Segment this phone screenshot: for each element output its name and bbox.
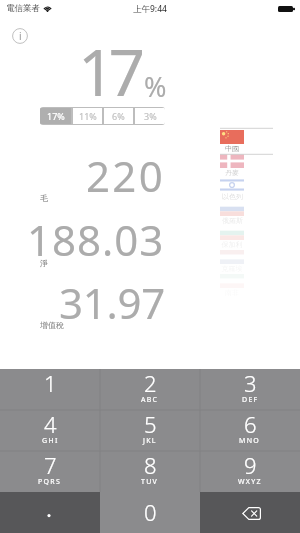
staticText: DEF	[242, 395, 259, 405]
staticText: 2	[144, 368, 157, 398]
staticText: 保加利亞	[220, 240, 244, 249]
staticText: 188.03	[27, 211, 165, 268]
button[interactable]: 4	[0, 410, 100, 451]
staticText: JKL	[143, 436, 157, 446]
staticText: 上午9:44	[133, 3, 167, 15]
staticText: 3	[244, 368, 257, 398]
staticText: 3%	[144, 110, 157, 122]
button[interactable]: 6	[200, 410, 300, 451]
button[interactable]: 0	[100, 492, 200, 533]
button[interactable]: 9	[200, 451, 300, 492]
staticText: 17	[78, 28, 140, 115]
button[interactable]: Delete	[200, 492, 300, 533]
staticText: %	[144, 68, 167, 105]
staticText: 以色列	[222, 192, 243, 201]
staticText: 1	[44, 368, 57, 398]
staticText: 17%	[47, 110, 65, 122]
staticText: 6	[244, 409, 257, 439]
staticText: PQRS	[38, 477, 62, 487]
staticText: GHI	[42, 436, 59, 446]
button[interactable]: Info	[12, 28, 28, 44]
staticText: 中國	[225, 144, 239, 153]
button[interactable]: 17%	[40, 108, 71, 124]
staticText: 7	[44, 450, 57, 480]
staticText: i	[19, 29, 22, 43]
staticText: ABC	[141, 395, 159, 405]
staticText: 11%	[79, 110, 97, 122]
staticText: MNO	[239, 436, 261, 446]
staticText: 31.97	[59, 274, 165, 331]
staticText: 4	[44, 409, 57, 439]
staticText: 220	[86, 147, 165, 204]
staticText: 5	[144, 409, 157, 439]
button[interactable]: 11%	[73, 108, 102, 124]
staticText: 電信業者	[6, 3, 40, 14]
button[interactable]: 5	[100, 410, 200, 451]
button[interactable]: 8	[100, 451, 200, 492]
button[interactable]: 3%	[135, 108, 165, 124]
staticText: 增值稅	[40, 320, 64, 330]
staticText: 8	[144, 450, 157, 480]
staticText: WXYZ	[238, 477, 262, 487]
button[interactable]: Country picker	[220, 124, 276, 324]
staticText: 淨	[40, 258, 48, 268]
staticText: 0	[144, 497, 157, 527]
button[interactable]: 7	[0, 451, 100, 492]
staticText: 丹麥	[225, 168, 239, 177]
staticText: 俄羅斯	[222, 216, 243, 225]
button[interactable]	[0, 492, 100, 533]
staticText: TUV	[141, 477, 159, 487]
button[interactable]: 2	[100, 369, 200, 410]
staticText: 9	[244, 450, 257, 480]
button[interactable]: 1	[0, 369, 100, 410]
button[interactable]: 6%	[104, 108, 133, 124]
staticText: 6%	[112, 110, 125, 122]
staticText: 毛	[40, 193, 48, 203]
button[interactable]: 3	[200, 369, 300, 410]
